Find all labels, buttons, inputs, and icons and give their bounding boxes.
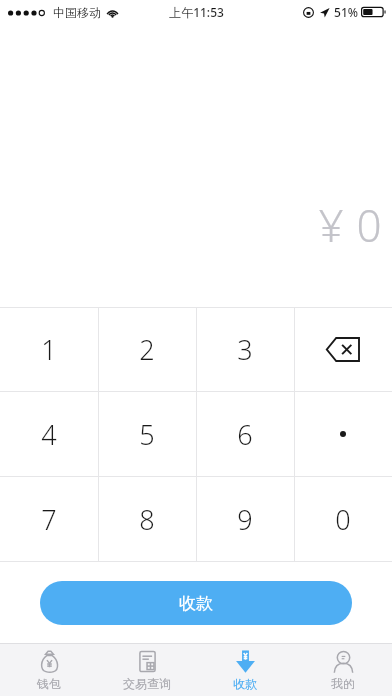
staticText: 交易查询 xyxy=(123,676,171,691)
button[interactable]: 7 xyxy=(0,477,98,561)
staticText: 0 xyxy=(356,195,382,255)
button[interactable]: 3 xyxy=(196,308,294,391)
button[interactable]: 8 xyxy=(98,477,196,561)
staticText: 0 xyxy=(335,501,351,538)
button[interactable]: 收款 xyxy=(196,644,294,696)
button[interactable]: 0 xyxy=(294,477,392,561)
button[interactable]: 我的 xyxy=(294,644,392,696)
staticText: 9 xyxy=(237,501,253,538)
staticText: 钱包 xyxy=(37,676,61,691)
staticText: 8 xyxy=(139,501,155,538)
button[interactable]: 1 xyxy=(0,308,98,391)
staticText: 1 xyxy=(41,331,57,368)
button[interactable]: 交易查询 xyxy=(98,644,196,696)
staticText: 5 xyxy=(139,416,155,453)
staticText: 收款 xyxy=(179,593,213,614)
button[interactable]: 6 xyxy=(196,392,294,476)
staticText: 2 xyxy=(139,331,155,368)
staticText: 我的 xyxy=(331,676,355,691)
staticText: 收款 xyxy=(233,676,257,691)
staticText: 7 xyxy=(41,501,57,538)
button[interactable]: 9 xyxy=(196,477,294,561)
staticText: 上午11:53 xyxy=(169,4,224,20)
staticText: 4 xyxy=(41,416,57,453)
button[interactable]: Backspace xyxy=(294,308,392,391)
button[interactable]: 5 xyxy=(98,392,196,476)
staticText: ¥ xyxy=(318,195,344,255)
staticText: 3 xyxy=(237,331,253,368)
button[interactable]: 2 xyxy=(98,308,196,391)
button[interactable]: 收款 xyxy=(40,581,352,625)
staticText: 51% xyxy=(334,4,358,20)
staticText: 6 xyxy=(237,416,253,453)
button[interactable]: 4 xyxy=(0,392,98,476)
button[interactable] xyxy=(294,392,392,476)
button[interactable]: 钱包 xyxy=(0,644,98,696)
staticText: 中国移动 xyxy=(53,5,101,20)
